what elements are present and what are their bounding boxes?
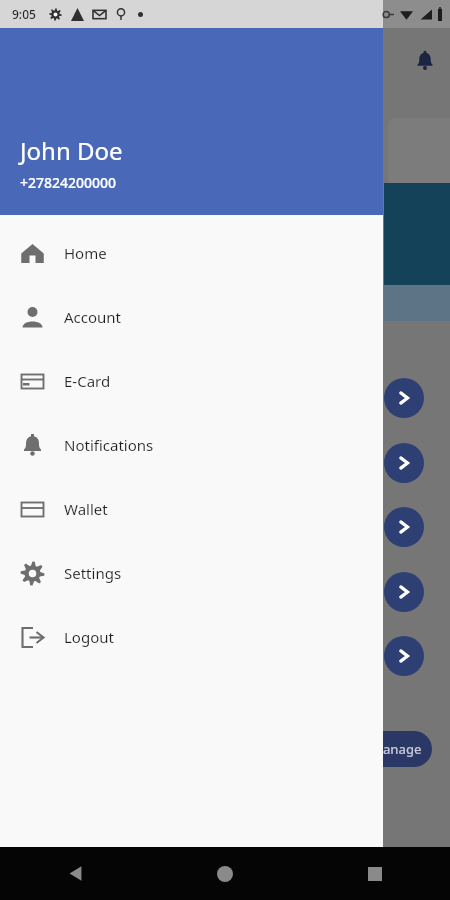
staticText: Manage [371, 740, 422, 758]
button[interactable]: Open [384, 371, 450, 425]
button[interactable]: Notifications [406, 42, 444, 80]
other: Open [384, 507, 424, 547]
button[interactable]: Recent apps [300, 847, 450, 900]
other: Open [384, 572, 424, 612]
other: Open [384, 636, 424, 676]
button[interactable]: Open [384, 565, 450, 619]
button[interactable]: Open [384, 500, 450, 554]
button[interactable]: Manage [360, 731, 432, 767]
staticText: Notifications [64, 435, 154, 455]
button[interactable]: Home [150, 847, 300, 900]
other: Open [384, 378, 424, 418]
button[interactable]: Open [384, 436, 450, 490]
staticText: 9:05 [12, 6, 36, 22]
staticText: Account [64, 307, 122, 327]
staticText: Settings [64, 563, 122, 583]
button[interactable]: Notifications [0, 413, 383, 477]
staticText: Home [64, 243, 107, 263]
staticText: Logout [64, 627, 114, 647]
button[interactable]: Settings [0, 541, 383, 605]
staticText: E-Card [64, 371, 111, 391]
staticText: Wallet [64, 499, 108, 519]
button[interactable]: Wallet [0, 477, 383, 541]
staticText: John Doe [20, 134, 123, 167]
button[interactable]: Open [384, 629, 450, 683]
button[interactable]: Back [0, 847, 150, 900]
other: Open [384, 443, 424, 483]
staticText: +27824200000 [20, 173, 117, 192]
button[interactable]: Home [0, 221, 383, 285]
button[interactable]: Logout [0, 605, 383, 669]
button[interactable]: E-Card [0, 349, 383, 413]
button[interactable]: Account [0, 285, 383, 349]
